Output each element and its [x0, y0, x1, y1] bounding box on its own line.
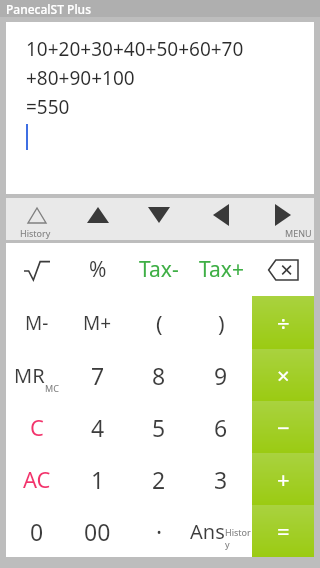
- button[interactable]: Backspace: [252, 243, 314, 296]
- staticText: MR: [14, 362, 45, 389]
- button[interactable]: 7: [67, 349, 128, 401]
- staticText: ÷: [277, 308, 290, 338]
- staticText: ·: [156, 516, 163, 547]
- button[interactable]: Scroll down: [128, 198, 190, 240]
- button[interactable]: 3: [190, 453, 252, 505]
- button[interactable]: M+: [67, 296, 128, 349]
- staticText: +: [277, 464, 290, 494]
- button[interactable]: 00: [67, 505, 128, 557]
- button[interactable]: Equals: [252, 505, 314, 557]
- staticText: M+: [83, 310, 112, 336]
- button[interactable]: Ans: [190, 505, 252, 557]
- button[interactable]: M-: [6, 296, 67, 349]
- staticText: %: [89, 255, 107, 284]
- staticText: MC: [45, 382, 59, 394]
- button[interactable]: 8: [128, 349, 190, 401]
- staticText: 1: [91, 464, 105, 495]
- staticText: C: [30, 412, 44, 442]
- button[interactable]: Multiply: [252, 349, 314, 401]
- button[interactable]: Square root: [6, 243, 67, 296]
- button[interactable]: MR: [6, 349, 67, 401]
- staticText: 5: [152, 412, 166, 443]
- staticText: 9: [214, 360, 228, 391]
- staticText: History: [20, 227, 51, 239]
- staticText: Tax+: [199, 255, 244, 284]
- staticText: 3: [214, 464, 228, 495]
- staticText: 00: [84, 516, 111, 547]
- staticText: 10+20+30+40+50+60+70: [26, 36, 244, 62]
- button[interactable]: Tax+: [190, 243, 252, 296]
- staticText: 7: [91, 360, 105, 391]
- staticText: (: [156, 308, 163, 338]
- button[interactable]: Move left: [190, 198, 252, 240]
- staticText: MENU: [285, 227, 312, 239]
- button[interactable]: AC: [6, 453, 67, 505]
- button[interactable]: Scroll up: [67, 198, 128, 240]
- button[interactable]: 5: [128, 401, 190, 453]
- staticText: M-: [25, 310, 49, 336]
- staticText: +80+90+100: [26, 65, 135, 91]
- button[interactable]: 10+20+30+40+50+60+70: [6, 22, 314, 194]
- staticText: =: [277, 516, 290, 546]
- button[interactable]: (: [128, 296, 190, 349]
- staticText: −: [277, 412, 290, 442]
- button[interactable]: Tax-: [128, 243, 190, 296]
- staticText: AC: [23, 464, 51, 494]
- button[interactable]: 0: [6, 505, 67, 557]
- button[interactable]: Minus: [252, 401, 314, 453]
- staticText: 2: [152, 464, 166, 495]
- staticText: 6: [214, 412, 228, 443]
- button[interactable]: 2: [128, 453, 190, 505]
- staticText: 4: [91, 412, 105, 443]
- staticText: 8: [152, 360, 166, 391]
- button[interactable]: Menu: [252, 198, 314, 240]
- staticText: History: [225, 526, 252, 550]
- staticText: 0: [30, 516, 44, 547]
- button[interactable]: 9: [190, 349, 252, 401]
- staticText: Tax-: [139, 255, 179, 284]
- staticText: PanecalST Plus: [6, 1, 91, 17]
- button[interactable]: History: [6, 198, 67, 240]
- button[interactable]: 6: [190, 401, 252, 453]
- button[interactable]: Plus: [252, 453, 314, 505]
- staticText: Ans: [190, 518, 225, 545]
- staticText: ×: [277, 360, 290, 390]
- button[interactable]: ·: [128, 505, 190, 557]
- button[interactable]: 1: [67, 453, 128, 505]
- button[interactable]: C: [6, 401, 67, 453]
- button[interactable]: %: [67, 243, 128, 296]
- staticText: ): [218, 308, 225, 338]
- staticText: =550: [26, 94, 70, 120]
- button[interactable]: Divide: [252, 296, 314, 349]
- button[interactable]: ): [190, 296, 252, 349]
- button[interactable]: 4: [67, 401, 128, 453]
